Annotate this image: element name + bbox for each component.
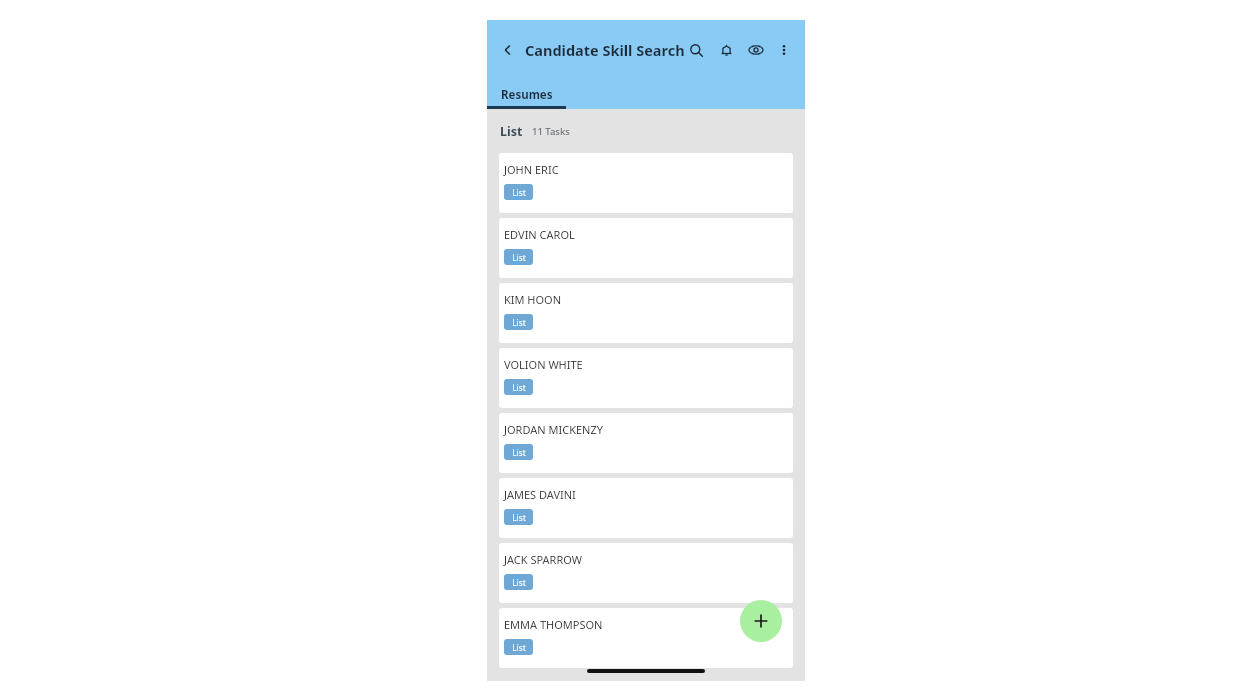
staticText: List bbox=[512, 382, 526, 393]
staticText: List bbox=[512, 317, 526, 328]
button[interactable]: Visibility bbox=[745, 39, 767, 61]
button[interactable]: JORDAN MICKENZY bbox=[499, 413, 793, 473]
staticText: List bbox=[512, 187, 526, 198]
button[interactable]: List bbox=[504, 184, 533, 200]
button[interactable]: List bbox=[504, 314, 533, 330]
staticText: List bbox=[512, 512, 526, 523]
button[interactable]: Notifications bbox=[715, 39, 737, 61]
staticText: JOHN ERIC bbox=[504, 162, 559, 177]
button[interactable]: JACK SPARROW bbox=[499, 543, 793, 603]
staticText: Resumes bbox=[501, 87, 553, 103]
staticText: KIM HOON bbox=[504, 292, 562, 307]
button[interactable]: List bbox=[504, 639, 533, 655]
staticText: EDVIN CAROL bbox=[504, 227, 575, 242]
button[interactable]: List bbox=[504, 444, 533, 460]
staticText: List bbox=[512, 447, 526, 458]
button[interactable]: JAMES DAVINI bbox=[499, 478, 793, 538]
staticText: JACK SPARROW bbox=[504, 552, 583, 567]
button[interactable]: List bbox=[504, 509, 533, 525]
staticText: List bbox=[512, 642, 526, 653]
button[interactable]: KIM HOON bbox=[499, 283, 793, 343]
button[interactable]: Back bbox=[497, 39, 519, 61]
staticText: JAMES DAVINI bbox=[504, 487, 576, 502]
button[interactable]: JOHN ERIC bbox=[499, 153, 793, 213]
button[interactable]: List bbox=[504, 379, 533, 395]
button[interactable]: Resumes bbox=[487, 80, 566, 109]
staticText: List bbox=[500, 123, 523, 140]
staticText: List bbox=[512, 252, 526, 263]
button[interactable]: List bbox=[504, 249, 533, 265]
staticText: VOLION WHITE bbox=[504, 357, 583, 372]
staticText: EMMA THOMPSON bbox=[504, 617, 603, 632]
button[interactable]: EDVIN CAROL bbox=[499, 218, 793, 278]
staticText: 11 Tasks bbox=[532, 125, 570, 138]
button[interactable]: Add bbox=[740, 600, 782, 642]
button[interactable]: VOLION WHITE bbox=[499, 348, 793, 408]
button[interactable]: List bbox=[504, 574, 533, 590]
button[interactable]: Search bbox=[685, 39, 707, 61]
staticText: Candidate Skill Search bbox=[525, 40, 685, 60]
button[interactable]: More options bbox=[773, 39, 795, 61]
button[interactable]: EMMA THOMPSON bbox=[499, 608, 793, 668]
staticText: List bbox=[512, 577, 526, 588]
staticText: JORDAN MICKENZY bbox=[504, 422, 603, 437]
